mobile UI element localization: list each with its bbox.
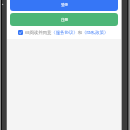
staticText: 注册 [61,18,69,23]
staticText: 登录 [61,3,69,8]
button[interactable]: 注册 [10,13,118,26]
button[interactable]: 登录 [10,0,118,11]
button[interactable]: Agree to terms [18,30,23,35]
staticText: 已阅读并同意《服务协议》和《隐私政策》 [25,30,109,35]
